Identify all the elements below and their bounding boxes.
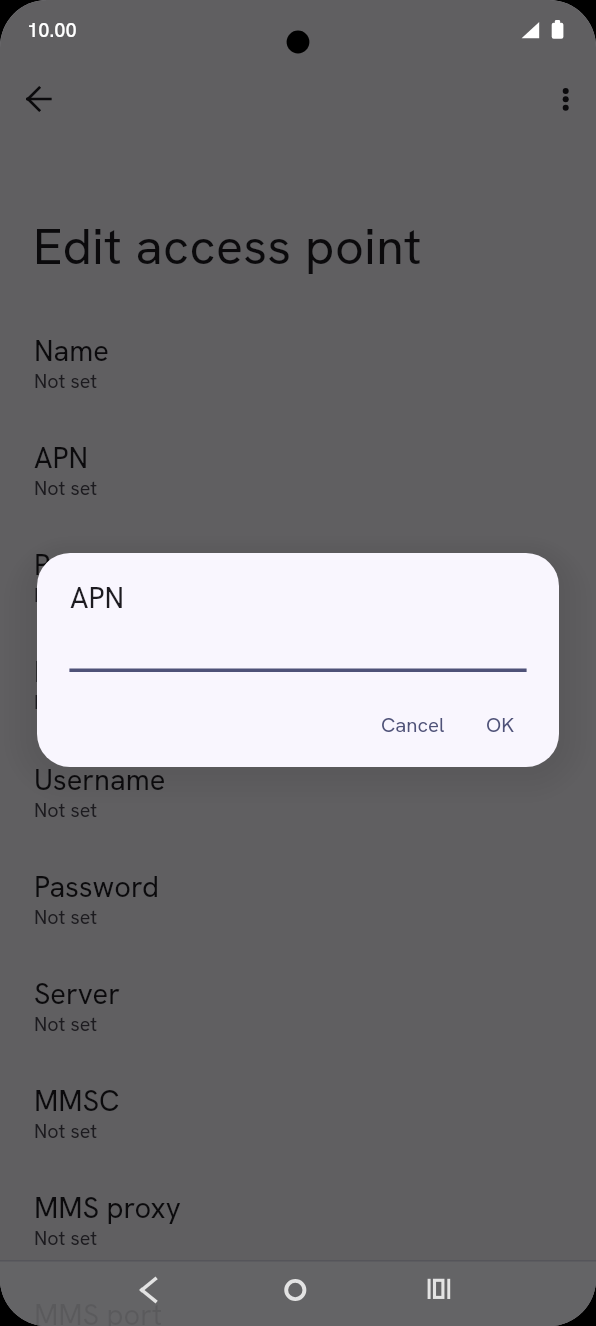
button[interactable]: Username bbox=[0, 755, 596, 855]
button[interactable]: Recent apps bbox=[411, 1262, 467, 1318]
staticText: Not set bbox=[34, 689, 97, 715]
button[interactable]: OK bbox=[470, 703, 531, 748]
button[interactable]: APN bbox=[0, 433, 596, 533]
button[interactable]: Back bbox=[120, 1262, 176, 1318]
button[interactable]: MMS port bbox=[0, 1290, 596, 1326]
staticText: Password bbox=[34, 868, 159, 906]
button[interactable]: Port bbox=[0, 647, 596, 747]
staticText: MMS port bbox=[34, 1296, 163, 1326]
staticText: MMS proxy bbox=[34, 1189, 181, 1227]
staticText: Not set bbox=[34, 1118, 97, 1144]
staticText: OK bbox=[486, 712, 515, 739]
staticText: Not set bbox=[34, 904, 97, 930]
staticText: Port bbox=[34, 653, 88, 691]
staticText: Not set bbox=[34, 1011, 97, 1037]
staticText: Not set bbox=[34, 1225, 97, 1251]
button[interactable]: Name bbox=[0, 326, 596, 426]
staticText: Not set bbox=[34, 368, 97, 394]
staticText: Server bbox=[34, 975, 120, 1013]
button[interactable]: Home bbox=[267, 1262, 323, 1318]
staticText: Proxy bbox=[34, 546, 108, 584]
button[interactable]: Proxy bbox=[0, 540, 596, 640]
staticText: MMSC bbox=[34, 1082, 120, 1120]
staticText: Cancel bbox=[381, 712, 445, 739]
staticText: 10.00 bbox=[27, 17, 77, 43]
staticText: Not set bbox=[34, 475, 97, 501]
button[interactable]: MMS proxy bbox=[0, 1183, 596, 1283]
staticText: Name bbox=[34, 332, 109, 370]
button[interactable]: MMSC bbox=[0, 1076, 596, 1176]
staticText: Username bbox=[34, 761, 166, 799]
button[interactable]: Cancel bbox=[365, 703, 461, 748]
staticText: Not set bbox=[34, 797, 97, 823]
button[interactable]: Password bbox=[0, 862, 596, 962]
button[interactable]: More options bbox=[542, 75, 590, 123]
staticText: Edit access point bbox=[33, 214, 422, 279]
staticText: APN bbox=[34, 439, 89, 477]
button[interactable]: Navigate up bbox=[15, 75, 63, 123]
staticText: APN bbox=[70, 579, 125, 617]
staticText: Not set bbox=[34, 582, 97, 608]
button[interactable]: Server bbox=[0, 969, 596, 1069]
